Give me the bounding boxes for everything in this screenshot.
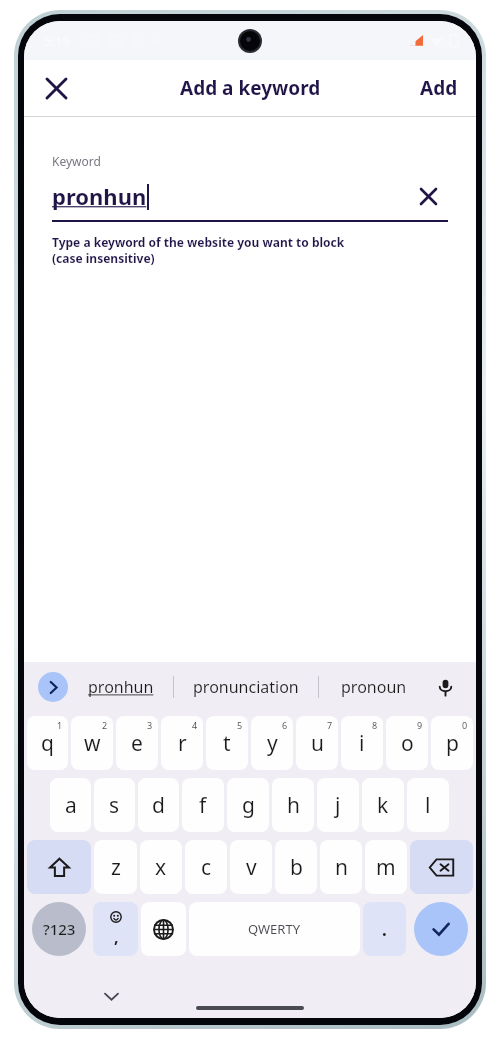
- staticText: ,: [114, 926, 119, 948]
- button[interactable]: Change language: [141, 902, 186, 956]
- staticText: r: [178, 729, 187, 758]
- button[interactable]: b: [275, 840, 317, 894]
- button[interactable]: n: [320, 840, 362, 894]
- staticText: k: [377, 791, 389, 820]
- staticText: s: [109, 791, 120, 820]
- staticText: b: [290, 853, 303, 882]
- staticText: w: [84, 729, 101, 758]
- button[interactable]: Clear text: [408, 176, 448, 216]
- button[interactable]: pronunciation: [174, 662, 318, 712]
- button[interactable]: r: [161, 716, 203, 770]
- button[interactable]: i: [341, 716, 383, 770]
- staticText: d: [152, 791, 165, 820]
- staticText: q: [41, 729, 54, 758]
- staticText: 8: [372, 719, 378, 731]
- staticText: x: [155, 853, 167, 882]
- staticText: a: [65, 791, 77, 820]
- button[interactable]: Voice input: [428, 670, 462, 704]
- button[interactable]: d: [138, 778, 179, 832]
- button[interactable]: e: [116, 716, 158, 770]
- staticText: 4: [192, 719, 198, 731]
- staticText: h: [287, 791, 300, 820]
- button[interactable]: w: [71, 716, 113, 770]
- staticText: 3: [147, 719, 153, 731]
- staticText: pronunciation: [193, 676, 299, 698]
- staticText: pronhun: [88, 676, 154, 698]
- button[interactable]: Close: [32, 64, 80, 112]
- button[interactable]: m: [365, 840, 407, 894]
- button[interactable]: QWERTY: [189, 902, 360, 956]
- button[interactable]: t: [206, 716, 248, 770]
- button[interactable]: Enter: [414, 902, 468, 956]
- staticText: Add a keyword: [180, 75, 321, 101]
- staticText: 0: [462, 719, 468, 731]
- button[interactable]: Emoji and comma: [93, 902, 138, 956]
- staticText: Type a keyword of the website you want t…: [52, 234, 345, 266]
- button[interactable]: f: [182, 778, 224, 832]
- button[interactable]: pronoun: [319, 662, 428, 712]
- button[interactable]: Backspace: [410, 840, 473, 894]
- button[interactable]: g: [227, 778, 269, 832]
- staticText: p: [446, 729, 459, 758]
- button[interactable]: z: [94, 840, 137, 894]
- button[interactable]: x: [140, 840, 182, 894]
- button[interactable]: v: [230, 840, 272, 894]
- staticText: 5: [237, 719, 243, 731]
- button[interactable]: y: [251, 716, 293, 770]
- staticText: m: [376, 853, 396, 882]
- staticText: 7: [327, 719, 333, 731]
- staticText: i: [359, 729, 365, 758]
- staticText: ?123: [43, 919, 76, 939]
- button[interactable]: pronhun: [68, 662, 173, 712]
- staticText: .: [382, 918, 387, 941]
- button[interactable]: ?123: [32, 902, 86, 956]
- staticText: pronoun: [341, 676, 407, 698]
- staticText: Add: [420, 75, 458, 101]
- button[interactable]: Expand suggestions: [38, 672, 68, 702]
- button[interactable]: l: [407, 778, 449, 832]
- button[interactable]: c: [185, 840, 227, 894]
- staticText: 1: [57, 719, 63, 731]
- button[interactable]: p: [431, 716, 473, 770]
- staticText: 6: [282, 719, 288, 731]
- button[interactable]: h: [272, 778, 314, 832]
- staticText: l: [425, 791, 431, 820]
- staticText: t: [223, 729, 231, 758]
- staticText: Keyword: [52, 153, 101, 169]
- button[interactable]: j: [317, 778, 359, 832]
- staticText: z: [111, 853, 121, 882]
- staticText: y: [267, 729, 278, 758]
- staticText: n: [335, 853, 348, 882]
- button[interactable]: k: [362, 778, 404, 832]
- staticText: v: [246, 853, 257, 882]
- staticText: pronhun: [52, 181, 147, 211]
- button[interactable]: Add: [402, 65, 476, 111]
- staticText: o: [401, 729, 414, 758]
- button[interactable]: .: [363, 902, 406, 956]
- button[interactable]: q: [27, 716, 68, 770]
- button[interactable]: Hide keyboard: [96, 981, 126, 1011]
- staticText: f: [199, 791, 207, 820]
- button[interactable]: a: [50, 778, 91, 832]
- button[interactable]: o: [386, 716, 428, 770]
- button[interactable]: u: [296, 716, 338, 770]
- staticText: 2: [102, 719, 108, 731]
- staticText: QWERTY: [248, 920, 301, 938]
- staticText: g: [242, 791, 255, 820]
- staticText: e: [131, 729, 143, 758]
- staticText: 9: [417, 719, 423, 731]
- button[interactable]: s: [94, 778, 135, 832]
- button[interactable]: Shift: [27, 840, 91, 894]
- staticText: u: [311, 729, 324, 758]
- staticText: c: [201, 853, 212, 882]
- staticText: j: [335, 791, 341, 820]
- button[interactable]: pronhun: [52, 176, 448, 216]
